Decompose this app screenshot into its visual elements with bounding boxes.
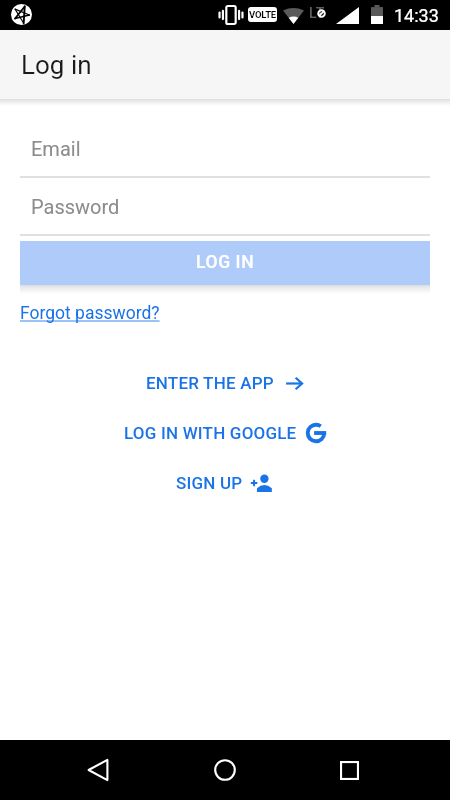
- staticText: 14:33: [394, 5, 439, 26]
- staticText: SIGN UP: [176, 473, 243, 493]
- button[interactable]: Home: [203, 748, 247, 792]
- button[interactable]: Email: [20, 128, 430, 176]
- button[interactable]: SIGN UP: [176, 471, 274, 495]
- button[interactable]: LOG IN: [20, 241, 430, 285]
- staticText: Email: [31, 137, 81, 160]
- staticText: VOLTE: [249, 9, 277, 20]
- button[interactable]: ENTER THE APP: [146, 373, 304, 393]
- button[interactable]: Forgot password?: [20, 300, 160, 326]
- staticText: Forgot password?: [20, 303, 160, 324]
- button[interactable]: Back: [76, 748, 120, 792]
- button[interactable]: Password: [20, 186, 430, 234]
- staticText: Password: [31, 195, 120, 218]
- staticText: LOG IN WITH GOOGLE: [124, 423, 297, 443]
- button[interactable]: LOG IN WITH GOOGLE: [124, 422, 327, 444]
- button[interactable]: Recents: [327, 748, 371, 792]
- staticText: Log in: [21, 50, 92, 80]
- staticText: LTE: [309, 5, 334, 19]
- staticText: ENTER THE APP: [146, 373, 274, 393]
- staticText: LOG IN: [196, 252, 255, 273]
